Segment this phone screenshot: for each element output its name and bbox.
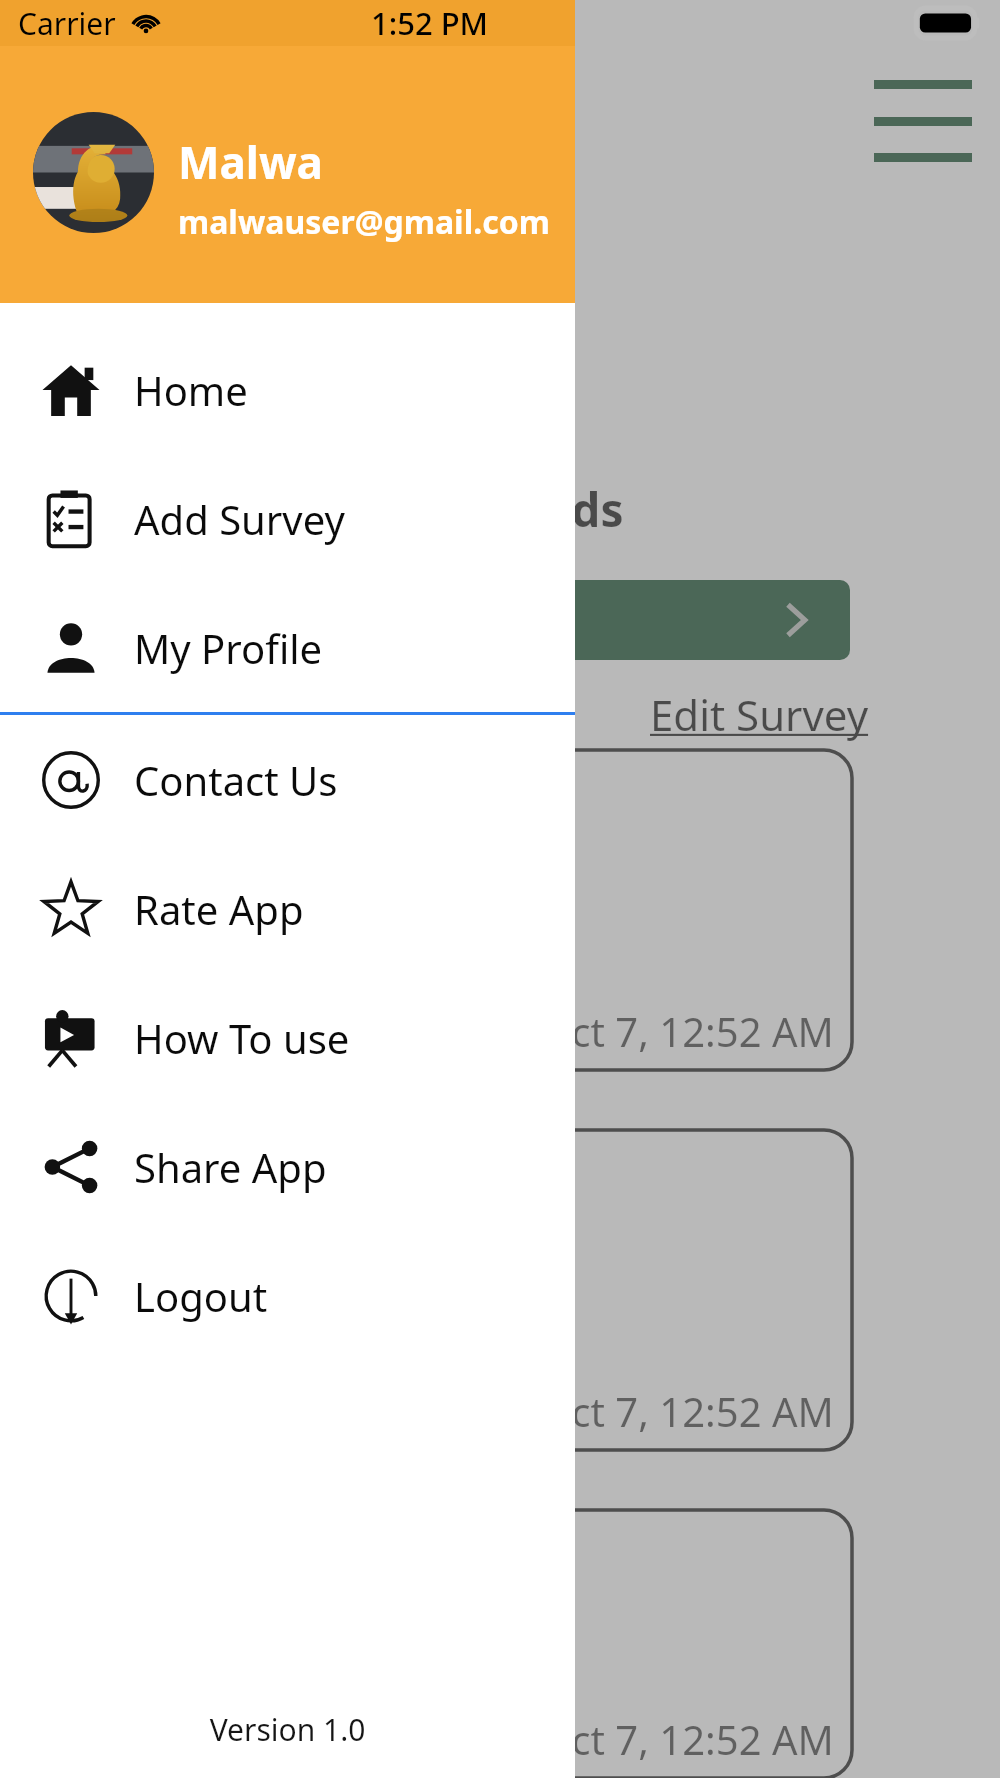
staticText: malwauser@gmail.com (178, 200, 550, 244)
button[interactable]: Profile photo (33, 112, 154, 233)
button[interactable]: Open navigation menu (874, 76, 972, 162)
staticText: Home (134, 363, 248, 417)
button[interactable]: Share App (0, 1102, 575, 1231)
staticText: Oct 7, 12:52 AM (540, 1712, 834, 1766)
staticText: My Records (360, 478, 624, 541)
button[interactable]: Oct 7, 12:52 AM (150, 1510, 852, 1778)
staticText: Rate App (134, 882, 304, 936)
staticText: Carrier (18, 3, 116, 44)
staticText: Share App (134, 1140, 327, 1194)
button[interactable]: Logout (0, 1231, 575, 1360)
button[interactable]: Add Survey (0, 454, 575, 583)
button[interactable]: My Profile (0, 583, 575, 712)
button[interactable]: Contact Us (0, 715, 575, 844)
staticText: Version 1.0 (0, 1709, 575, 1750)
staticText: My Profile (134, 621, 323, 675)
button[interactable] (150, 580, 850, 660)
staticText: Malwa (178, 132, 323, 192)
staticText: Add Survey (134, 492, 345, 546)
staticText: Logout (134, 1269, 268, 1323)
button[interactable]: Home (0, 325, 575, 454)
staticText: How To use (134, 1011, 350, 1065)
staticText: Contact Us (134, 753, 338, 807)
button[interactable]: Oct 7, 12:52 AM (150, 1130, 852, 1450)
staticText: 1:52 PM (371, 2, 489, 44)
button[interactable]: Oct 7, 12:52 AM (150, 750, 852, 1070)
button[interactable]: How To use (0, 973, 575, 1102)
button[interactable]: Rate App (0, 844, 575, 973)
button[interactable]: Edit Survey (650, 686, 869, 743)
staticText: Oct 7, 12:52 AM (540, 1384, 834, 1438)
staticText: Oct 7, 12:52 AM (540, 1004, 834, 1058)
